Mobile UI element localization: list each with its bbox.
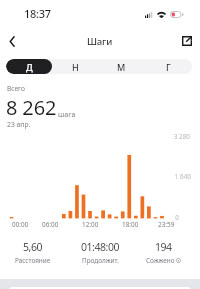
button[interactable]: Open in new window xyxy=(177,30,197,52)
staticText: 12:00 xyxy=(82,220,99,229)
staticText: Расстояние xyxy=(15,256,51,265)
staticText: Г xyxy=(166,61,171,73)
button[interactable]: Г xyxy=(145,59,192,74)
staticText: 194 xyxy=(155,240,172,254)
staticText: Шаги xyxy=(87,35,113,48)
staticText: 5,60 xyxy=(23,240,43,254)
button[interactable]: 194 xyxy=(130,240,196,265)
staticText: шага xyxy=(58,109,76,119)
staticText: 18:00 xyxy=(122,220,139,229)
staticText: 3 280 xyxy=(0,132,190,141)
staticText: 0 xyxy=(0,213,179,222)
staticText: 06:00 xyxy=(42,220,59,229)
button[interactable]: 5,60 xyxy=(0,240,66,265)
staticText: Сожжено xyxy=(146,256,175,265)
staticText: 18:37 xyxy=(24,6,51,21)
button[interactable]: Д xyxy=(6,59,52,74)
staticText: М xyxy=(117,61,126,73)
staticText: Продолжит. xyxy=(82,256,119,265)
staticText: 8 262 xyxy=(6,94,57,121)
button[interactable]: 01:48:00 xyxy=(67,240,133,265)
staticText: 23 апр. xyxy=(7,120,31,129)
staticText: 1 640 xyxy=(0,172,191,181)
staticText: Д xyxy=(26,61,33,73)
button[interactable]: М xyxy=(98,59,145,74)
button[interactable]: Back xyxy=(0,28,24,54)
staticText: Н xyxy=(72,61,79,73)
staticText: 01:48:00 xyxy=(81,240,120,254)
button[interactable]: Н xyxy=(52,59,98,74)
staticText: Всего xyxy=(7,84,25,93)
staticText: 00:00 xyxy=(12,220,29,229)
staticText: 23:59 xyxy=(158,220,175,229)
